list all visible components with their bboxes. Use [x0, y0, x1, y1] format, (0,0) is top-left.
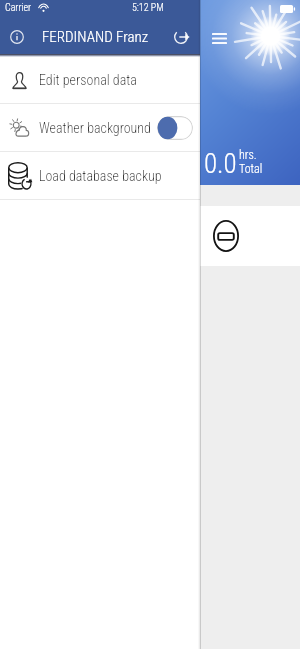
staticText: Edit personal data — [39, 72, 137, 88]
button[interactable]: Toggle weather background — [157, 116, 193, 140]
button[interactable]: Remove entry — [213, 220, 239, 252]
button[interactable]: Log out — [169, 25, 193, 49]
button[interactable]: Edit personal data — [0, 57, 200, 103]
button[interactable]: Remove entry — [200, 206, 300, 266]
staticText: 0.0 — [204, 148, 237, 180]
button[interactable]: Open navigation menu — [205, 24, 233, 52]
staticText: Total — [239, 162, 263, 176]
button[interactable]: Info — [5, 25, 29, 49]
button[interactable]: Weather background — [0, 104, 200, 151]
staticText: FERDINAND Franz — [42, 28, 149, 46]
button[interactable]: Load database backup — [0, 152, 200, 199]
staticText: 5:12 PM — [132, 2, 164, 14]
staticText: Carrier — [5, 2, 32, 14]
staticText: Weather background — [39, 120, 151, 136]
staticText: hrs. — [239, 148, 257, 162]
staticText: Load database backup — [39, 168, 162, 184]
